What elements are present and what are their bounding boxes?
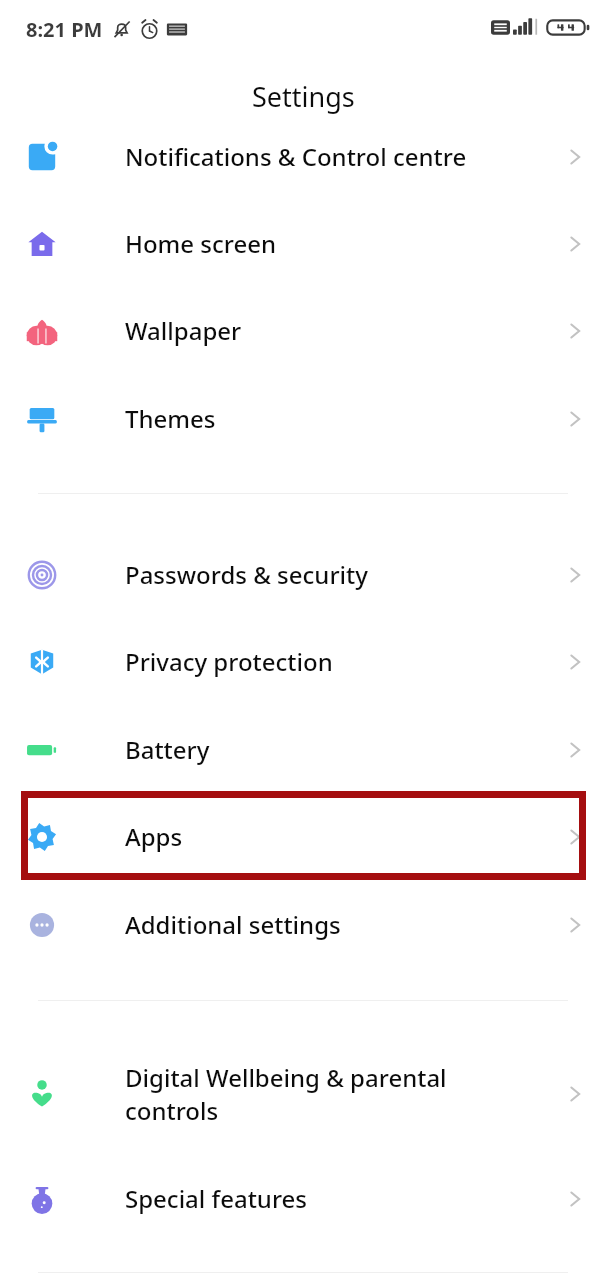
button[interactable]: Apps: [0, 793, 606, 880]
button[interactable]: Additional settings: [0, 881, 606, 968]
staticText: Wallpaper: [125, 314, 242, 347]
staticText: Battery: [125, 733, 210, 766]
button[interactable]: Home screen: [0, 200, 606, 287]
button[interactable]: Privacy protection: [0, 618, 606, 705]
button[interactable]: Notifications & Control centre: [0, 113, 606, 200]
staticText: Digital Wellbeing & parental controls: [125, 1061, 447, 1127]
button[interactable]: Digital Wellbeing & parental controls: [0, 1050, 606, 1137]
staticText: Privacy protection: [125, 645, 333, 678]
button[interactable]: Themes: [0, 375, 606, 462]
staticText: Themes: [125, 402, 216, 435]
button[interactable]: Passwords & security: [0, 531, 606, 618]
button[interactable]: Special features: [0, 1155, 606, 1242]
staticText: 8:21 PM: [26, 16, 103, 43]
staticText: Apps: [125, 820, 183, 853]
staticText: Passwords & security: [125, 558, 368, 591]
button[interactable]: Battery: [0, 706, 606, 793]
staticText: Notifications & Control centre: [125, 140, 467, 173]
staticText: Settings: [252, 78, 355, 115]
staticText: Special features: [125, 1182, 307, 1215]
staticText: Additional settings: [125, 908, 341, 941]
staticText: Home screen: [125, 227, 277, 260]
button[interactable]: Wallpaper: [0, 287, 606, 374]
